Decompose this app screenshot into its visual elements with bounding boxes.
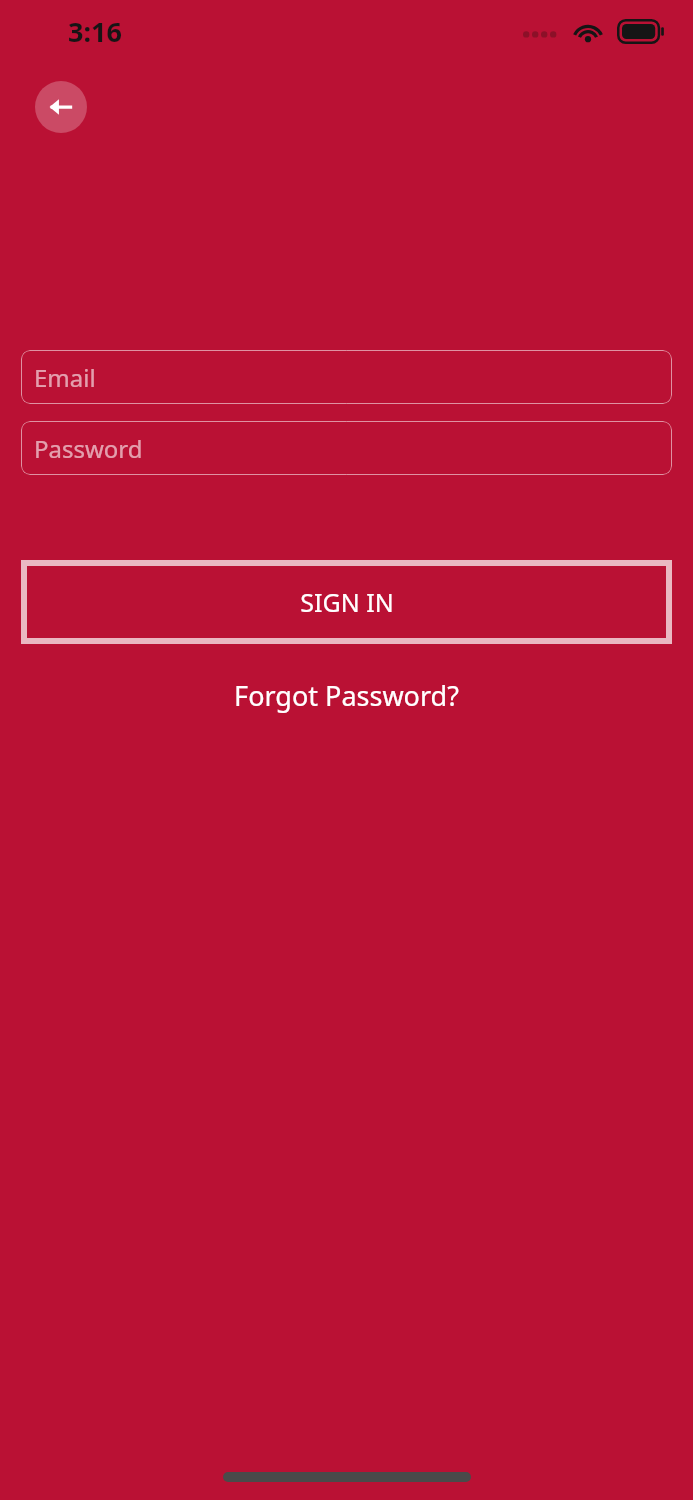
button[interactable]: SIGN IN bbox=[21, 560, 672, 644]
staticText: 3:16 bbox=[68, 13, 122, 50]
button[interactable]: Email bbox=[21, 350, 672, 404]
button[interactable]: Forgot Password? bbox=[0, 671, 693, 720]
staticText: Password bbox=[34, 432, 143, 465]
staticText: Email bbox=[34, 361, 96, 394]
staticText: SIGN IN bbox=[300, 585, 394, 619]
staticText: Forgot Password? bbox=[234, 677, 459, 714]
button[interactable]: Back bbox=[35, 81, 87, 133]
button[interactable]: Password bbox=[21, 421, 672, 475]
